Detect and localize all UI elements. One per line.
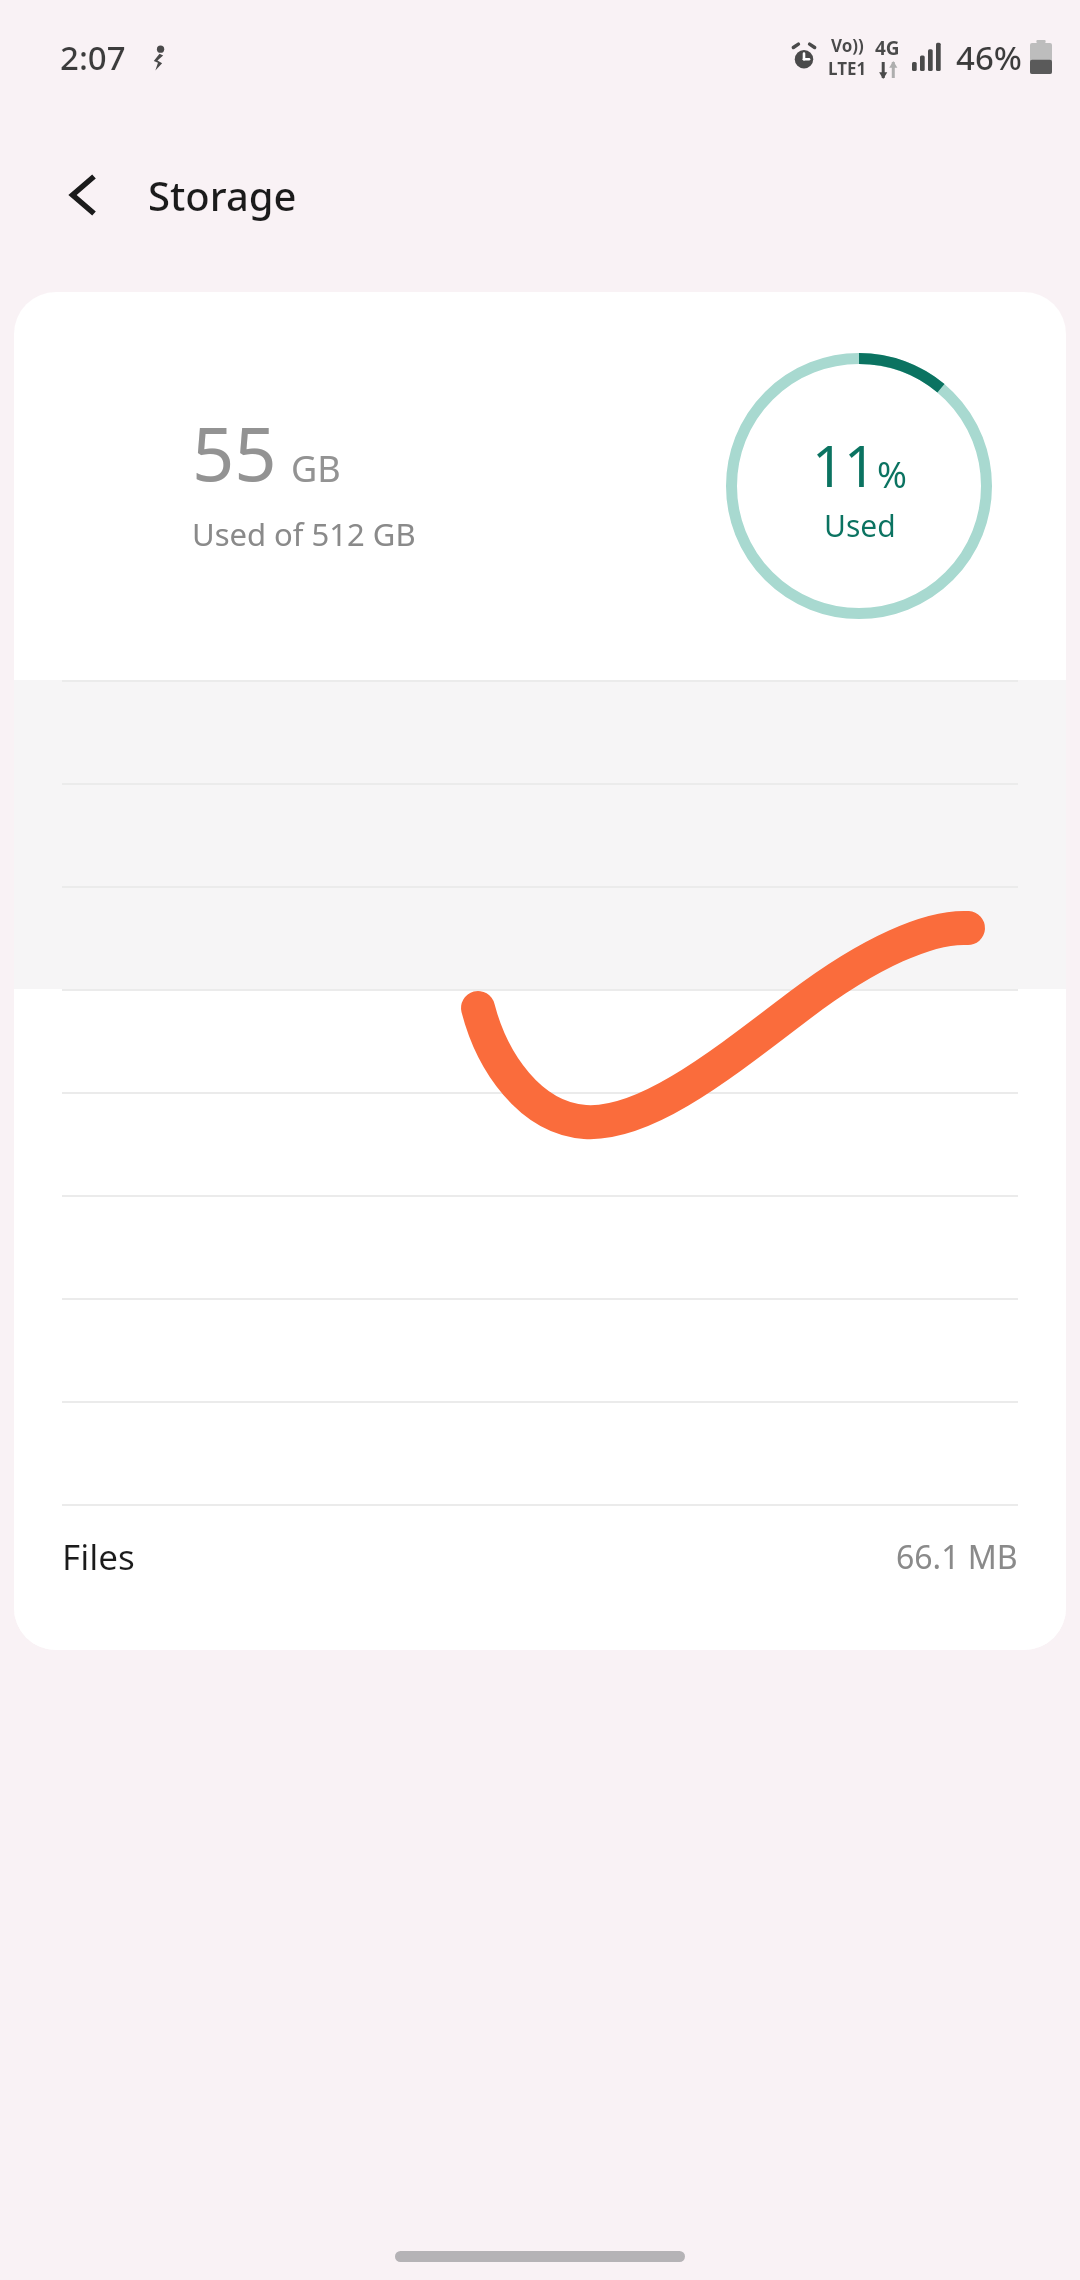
staticText: %	[877, 450, 907, 499]
staticText: 4G	[875, 35, 900, 61]
staticText: 55	[192, 402, 277, 503]
button[interactable]: Files	[14, 1506, 1066, 1650]
staticText: Used of 512 GB	[192, 513, 416, 555]
staticText: Vo))	[831, 34, 864, 57]
staticText: 11	[812, 427, 877, 503]
button[interactable]: Photos and videos	[14, 991, 1066, 1092]
staticText: 2:07	[60, 35, 126, 80]
staticText: 46%	[956, 35, 1022, 80]
button[interactable]: Music and audio	[14, 1094, 1066, 1195]
staticText: 66.1 MB	[896, 1535, 1018, 1579]
staticText: LTE1	[828, 57, 867, 80]
staticText: GB	[291, 444, 341, 493]
staticText: Storage	[148, 168, 297, 222]
button[interactable]: System memory	[14, 888, 1066, 989]
button[interactable]: Back	[42, 153, 126, 237]
staticText: Used	[824, 505, 896, 546]
staticText: Files	[62, 1533, 135, 1581]
